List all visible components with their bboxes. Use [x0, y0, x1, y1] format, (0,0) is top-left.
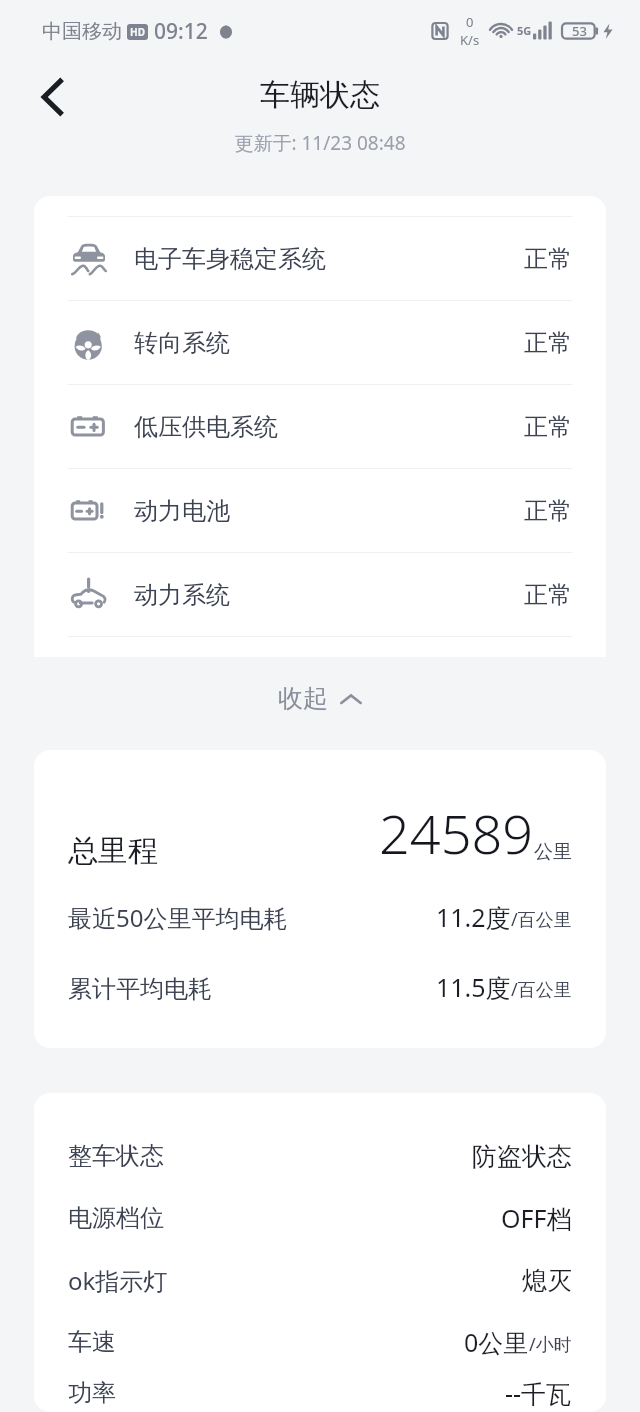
- staticText: /百公里: [511, 907, 572, 932]
- staticText: 车速: [68, 1327, 116, 1357]
- staticText: 动力系统: [134, 580, 230, 610]
- staticText: 累计平均电耗: [68, 974, 212, 1004]
- staticText: --千瓦: [505, 1376, 572, 1410]
- staticText: 转向系统: [134, 328, 230, 358]
- staticText: 最近50公里平均电耗: [68, 901, 288, 934]
- button[interactable]: 收起: [0, 657, 640, 739]
- staticText: 总里程: [68, 832, 158, 870]
- staticText: 正常: [524, 412, 572, 442]
- button[interactable]: 返回: [22, 66, 84, 128]
- button[interactable]: 转向系统: [34, 301, 606, 384]
- staticText: 更新于: 11/23 08:48: [234, 130, 406, 156]
- staticText: K/s: [460, 31, 480, 49]
- staticText: 正常: [524, 580, 572, 610]
- staticText: 公里: [534, 840, 572, 864]
- staticText: /百公里: [511, 977, 572, 1002]
- button[interactable]: 动力电池: [34, 469, 606, 552]
- staticText: 中国移动: [42, 19, 122, 44]
- staticText: 正常: [524, 328, 572, 358]
- staticText: 5G: [517, 23, 532, 38]
- button[interactable]: 整车状态: [68, 1125, 572, 1187]
- staticText: 53: [572, 22, 587, 40]
- staticText: 09:12: [154, 17, 208, 46]
- staticText: 熄灭: [522, 1265, 572, 1296]
- staticText: 防盗状态: [472, 1141, 572, 1172]
- staticText: OFF档: [501, 1201, 572, 1235]
- staticText: 收起: [278, 683, 328, 714]
- button[interactable]: 电子车身稳定系统: [34, 217, 606, 300]
- staticText: 电源档位: [68, 1203, 164, 1233]
- button[interactable]: 累计平均电耗: [68, 970, 572, 1004]
- staticText: 正常: [524, 244, 572, 274]
- staticText: 动力电池: [134, 496, 230, 526]
- staticText: 24589: [379, 796, 534, 870]
- button[interactable]: 电源档位: [68, 1187, 572, 1249]
- staticText: 正常: [524, 496, 572, 526]
- button[interactable]: 功率: [68, 1373, 572, 1412]
- button[interactable]: ok指示灯: [68, 1249, 572, 1311]
- button[interactable]: 车速: [68, 1311, 572, 1373]
- staticText: 整车状态: [68, 1141, 164, 1171]
- staticText: 0: [466, 13, 474, 31]
- staticText: ok指示灯: [68, 1264, 168, 1297]
- button[interactable]: 动力系统: [34, 553, 606, 636]
- staticText: 车辆状态: [260, 76, 380, 114]
- staticText: HD: [130, 25, 145, 39]
- button[interactable]: 低压供电系统: [34, 385, 606, 468]
- staticText: 电子车身稳定系统: [134, 244, 326, 274]
- staticText: 0公里: [464, 1325, 529, 1359]
- staticText: 11.2度: [436, 900, 511, 934]
- button[interactable]: 最近50公里平均电耗: [68, 900, 572, 934]
- staticText: 功率: [68, 1378, 116, 1408]
- staticText: 11.5度: [436, 970, 511, 1004]
- staticText: 低压供电系统: [134, 412, 278, 442]
- staticText: /小时: [529, 1332, 572, 1357]
